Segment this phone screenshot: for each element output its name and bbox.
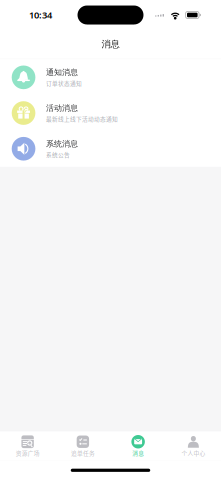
- staticText: 消息: [132, 449, 144, 457]
- button[interactable]: 消息: [110, 431, 166, 461]
- button[interactable]: 系统消息: [0, 131, 221, 167]
- staticText: 活动消息: [46, 103, 78, 113]
- button[interactable]: 个人中心: [166, 431, 221, 461]
- button[interactable]: 追单任务: [55, 431, 110, 461]
- staticText: 10:34: [29, 9, 52, 21]
- staticText: 系统消息: [46, 139, 78, 149]
- staticText: 个人中心: [181, 449, 205, 457]
- button[interactable]: 活动消息: [0, 95, 221, 131]
- staticText: 追单任务: [71, 449, 95, 457]
- staticText: 最新线上线下活动动态通知: [46, 115, 118, 123]
- staticText: 订单状态通知: [46, 79, 82, 87]
- staticText: 消息: [101, 38, 119, 50]
- button[interactable]: 通知消息: [0, 59, 221, 95]
- staticText: 资源广场: [16, 449, 40, 457]
- staticText: 通知消息: [46, 67, 78, 77]
- staticText: 系统公告: [46, 150, 70, 159]
- button[interactable]: 资源广场: [0, 431, 55, 461]
